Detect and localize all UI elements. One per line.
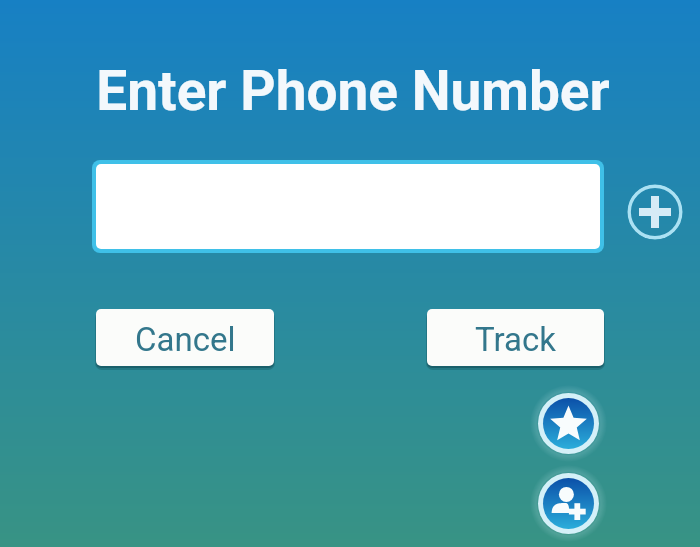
button[interactable]: Track [427,309,604,366]
button[interactable]: Phone number input [92,160,604,253]
button[interactable]: Add [627,184,683,240]
staticText: Enter Phone Number [96,59,610,123]
button[interactable]: Favorite [530,385,607,462]
staticText: Cancel [135,320,236,359]
staticText: Track [475,320,556,359]
button[interactable]: Cancel [96,309,274,366]
button[interactable]: Add contact [530,465,607,542]
